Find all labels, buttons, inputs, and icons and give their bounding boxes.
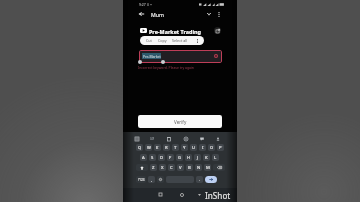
button[interactable]: Tool 3 — [182, 135, 189, 142]
button[interactable]: More options — [213, 8, 225, 20]
staticText: GIF — [150, 137, 155, 141]
button[interactable]: Emoji — [157, 176, 164, 183]
button[interactable]: M — [204, 164, 211, 171]
button[interactable]: Q — [136, 144, 143, 151]
button[interactable]: K — [203, 154, 210, 161]
staticText: 8 — [203, 144, 205, 147]
staticText: ?123 — [138, 178, 145, 182]
button[interactable]: R — [163, 144, 170, 151]
button[interactable]: Backspace — [213, 164, 225, 171]
staticText: 0 — [221, 144, 223, 147]
button[interactable]: Z — [150, 164, 157, 171]
staticText: G — [178, 155, 182, 161]
staticText: X — [161, 165, 164, 171]
button[interactable]: Hide keyboard — [194, 189, 205, 200]
staticText: Mum — [151, 11, 164, 18]
staticText: V — [179, 165, 182, 171]
button[interactable]: T — [172, 144, 179, 151]
button[interactable]: H — [185, 154, 192, 161]
button[interactable]: D — [158, 154, 165, 161]
button[interactable]: Tool 2 — [165, 135, 172, 142]
button[interactable]: Tool 0 — [133, 135, 140, 142]
button[interactable]: X — [159, 164, 166, 171]
button[interactable]: B — [186, 164, 193, 171]
button[interactable]: Select all — [172, 36, 188, 45]
staticText: H — [187, 155, 191, 161]
staticText: P — [219, 145, 222, 151]
button[interactable]: Enter — [205, 176, 217, 183]
staticText: 9:27 — [139, 2, 146, 7]
staticText: K — [205, 155, 208, 161]
button[interactable]: V — [177, 164, 184, 171]
staticText: D — [160, 155, 164, 161]
staticText: Y — [183, 145, 186, 151]
button[interactable]: Back — [135, 8, 147, 20]
staticText: L — [214, 155, 217, 161]
button[interactable]: Home — [176, 189, 187, 200]
staticText: 7 — [194, 144, 196, 147]
staticText: Copy — [158, 38, 167, 43]
staticText: T — [174, 145, 177, 151]
button[interactable]: P — [217, 144, 224, 151]
button[interactable]: Open in new — [214, 27, 221, 34]
staticText: B — [188, 165, 191, 171]
staticText: A — [142, 155, 145, 161]
staticText: M — [206, 165, 210, 171]
staticText: Pre-Market Trading — [149, 28, 201, 35]
button[interactable]: F — [167, 154, 174, 161]
button[interactable]: Copy — [156, 36, 168, 45]
staticText: Z — [152, 165, 155, 171]
staticText: Pre-Market — [143, 54, 161, 59]
staticText: I — [202, 145, 204, 151]
button[interactable]: A — [140, 154, 147, 161]
button[interactable]: Tool 5 — [214, 135, 221, 142]
button[interactable]: N — [195, 164, 202, 171]
staticText: J — [197, 155, 199, 161]
staticText: 5 — [176, 144, 178, 147]
staticText: 4 — [167, 144, 169, 147]
staticText: O — [210, 145, 214, 151]
staticText: 9 — [212, 144, 214, 147]
button[interactable]: Tool 4 — [198, 135, 205, 142]
staticText: Incorrect keyword. Please try again — [138, 65, 194, 70]
button[interactable]: U — [190, 144, 197, 151]
button[interactable]: Shift — [136, 164, 148, 171]
button[interactable]: Tool 1 — [149, 135, 156, 142]
staticText: InShot — [205, 190, 231, 201]
button[interactable]: Cut — [144, 36, 154, 45]
button[interactable]: C — [168, 164, 175, 171]
staticText: 2 — [149, 144, 151, 147]
staticText: E — [156, 145, 159, 151]
staticText: . — [199, 177, 201, 183]
staticText: F — [169, 155, 172, 161]
button[interactable]: E — [154, 144, 161, 151]
button[interactable]: L — [212, 154, 219, 161]
staticText: Verify — [174, 119, 187, 125]
button[interactable]: S — [149, 154, 156, 161]
staticText: Q — [138, 145, 142, 151]
button[interactable]: . — [196, 176, 203, 183]
staticText: 3 — [158, 144, 160, 147]
button[interactable]: ?123 — [136, 176, 146, 183]
button[interactable]: J — [194, 154, 201, 161]
button[interactable]: W — [145, 144, 152, 151]
button[interactable]: I — [199, 144, 206, 151]
button[interactable]: , — [148, 176, 155, 183]
button[interactable]: Verify — [138, 115, 222, 128]
staticText: R — [165, 145, 168, 151]
button[interactable]: Expand — [203, 8, 215, 20]
staticText: C — [170, 165, 173, 171]
staticText: N — [197, 165, 201, 171]
button[interactable]: G — [176, 154, 183, 161]
button[interactable]: Y — [181, 144, 188, 151]
staticText: W — [147, 145, 151, 151]
staticText: 1 — [140, 144, 142, 147]
staticText: , — [151, 177, 153, 183]
button[interactable]: O — [208, 144, 215, 151]
button[interactable]: Recents — [155, 189, 166, 200]
button[interactable]: More — [192, 36, 202, 45]
staticText: 6 — [185, 144, 187, 147]
staticText: Cut — [146, 38, 152, 43]
staticText: Select all — [172, 38, 188, 43]
